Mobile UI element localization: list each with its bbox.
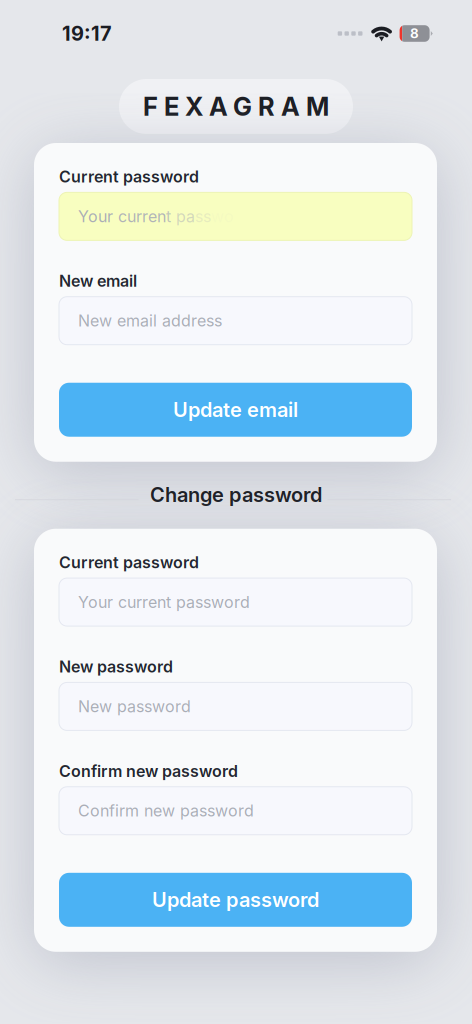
staticText: Current password <box>59 553 199 572</box>
staticText: Change password <box>150 483 322 507</box>
staticText: Current password <box>59 167 199 186</box>
button[interactable]: Your <box>59 192 412 240</box>
button[interactable]: Your current password <box>59 578 412 626</box>
button[interactable]: New email address <box>59 297 412 345</box>
staticText: New email address <box>78 311 222 330</box>
staticText: pa <box>176 207 195 226</box>
staticText: Confirm new password <box>59 761 238 781</box>
button[interactable]: Update password <box>59 873 412 927</box>
staticText: 8 <box>410 25 419 41</box>
staticText: Your current password <box>78 592 250 612</box>
staticText: New password <box>78 697 191 716</box>
staticText: Update email <box>173 398 298 422</box>
staticText: Update password <box>152 888 319 912</box>
staticText: 19:17 <box>62 21 112 46</box>
staticText: New email <box>59 271 137 291</box>
button[interactable]: New password <box>59 682 412 730</box>
staticText: ss <box>195 207 211 226</box>
staticText: t <box>166 207 176 226</box>
staticText: New password <box>59 657 173 676</box>
staticText: Confirm new password <box>78 801 254 820</box>
staticText: Your <box>78 207 118 226</box>
button[interactable]: Update email <box>59 383 412 437</box>
button[interactable]: FEXAGRAM <box>119 79 353 134</box>
staticText: curren <box>118 207 166 226</box>
button[interactable]: Confirm new password <box>59 787 412 835</box>
staticText: FEXAGRAM <box>143 91 329 122</box>
